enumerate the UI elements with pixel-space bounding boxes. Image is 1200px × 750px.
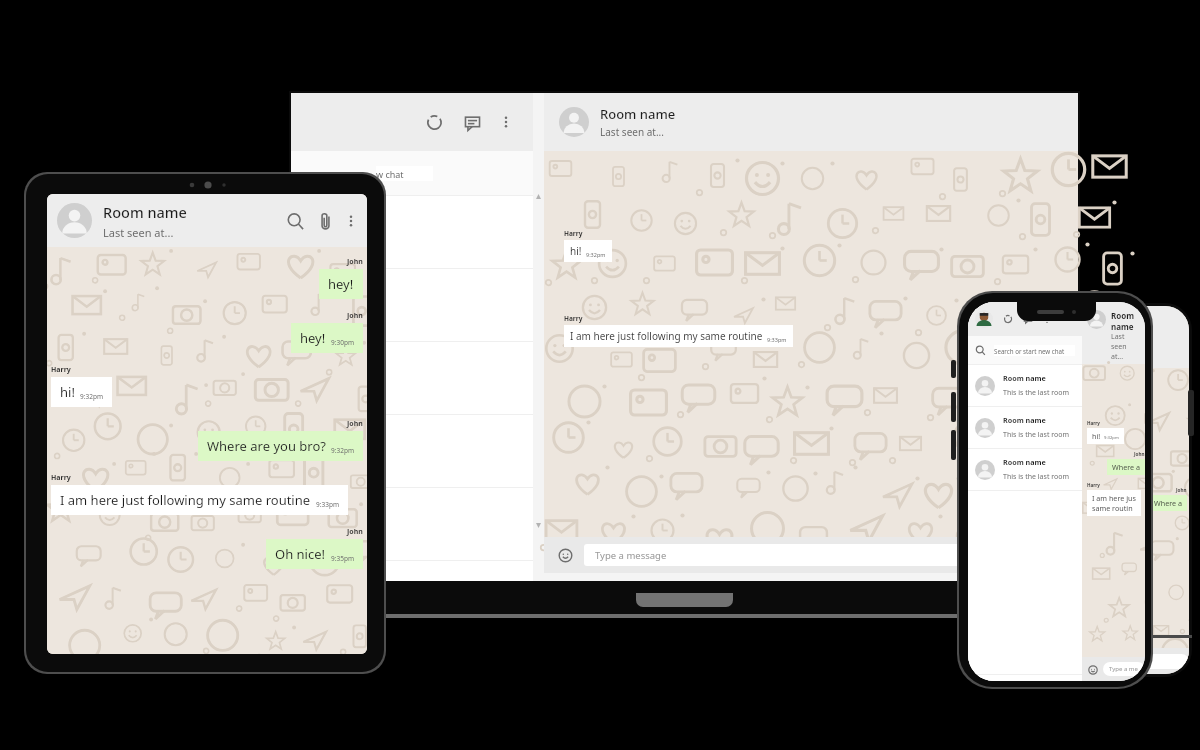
button[interactable]: Emoji [1085,662,1100,677]
staticText: Where are you bro? [207,437,326,455]
button[interactable]: Oh nice! [266,539,363,569]
staticText: I am here just following my same routine [60,491,311,509]
button[interactable]: Where are you bro? [198,431,363,461]
button[interactable]: Where a [1149,495,1187,511]
staticText: This is the last room [1003,430,1069,440]
button[interactable]: hey! [291,323,363,353]
button[interactable]: I am here just following my same routine [564,325,793,347]
button[interactable]: Emoji [553,543,577,567]
button[interactable] [291,269,533,341]
button[interactable]: hey! [319,269,363,299]
staticText: Oh nice! [275,545,326,563]
button[interactable]: Status [419,107,449,137]
staticText: Last seen at... [1111,332,1127,362]
staticText: Where a [1154,498,1182,508]
staticText: 9:32pm [1107,469,1122,475]
staticText: Last seen at... [1116,338,1133,368]
button[interactable]: I am here jus same routin [1087,490,1141,516]
staticText: Room name [1003,457,1046,467]
button[interactable]: Room name [968,407,1082,448]
button[interactable]: hi! [564,240,612,262]
staticText: John [347,527,363,537]
staticText: Harry [1087,420,1100,426]
staticText: I am here just following my same routine [570,329,763,343]
staticText: 9:35pm [331,554,354,563]
staticText: 9:33pm [767,336,787,343]
button[interactable]: Room name [1082,302,1145,364]
staticText: Type a message [595,549,667,562]
button[interactable]: Room name [968,449,1082,490]
button[interactable]: Room name [47,194,367,247]
staticText: 9:30pm [331,338,354,347]
button[interactable]: Room name [544,93,1078,151]
button[interactable]: More options [1040,313,1053,326]
staticText: John [347,311,363,321]
staticText: Search or start new chat [994,347,1065,355]
button[interactable]: More options [495,111,517,133]
button[interactable] [291,415,533,487]
staticText: Harry [51,473,71,483]
button[interactable]: Room name [968,365,1082,406]
staticText: Harry [564,314,583,323]
staticText: Harry [51,365,71,375]
button[interactable]: Status [1000,311,1016,327]
staticText: 9:32pm [586,251,606,258]
button[interactable]: I am here jus same routin [1090,528,1144,554]
staticText: This is the last room [1003,388,1069,398]
staticText: Room name [1003,415,1046,425]
button[interactable]: hi! [1087,428,1124,444]
staticText: Room name [1111,310,1135,332]
staticText: Last seen at... [103,225,174,240]
staticText: w chat [376,168,404,180]
button[interactable]: Type a me [1106,654,1189,669]
staticText: John [347,257,363,267]
staticText: hi! [60,383,75,401]
button[interactable]: I am here just following my same routine [51,485,348,515]
staticText: 9:33pm [316,500,339,509]
staticText: Type a me [1109,665,1138,673]
staticText: John [347,419,363,429]
button[interactable]: New chat [1020,311,1036,327]
button[interactable] [291,196,533,268]
button[interactable]: New chat [457,107,487,137]
staticText: 9:32pm [1104,435,1119,441]
button[interactable]: Emoji [1087,653,1103,669]
button[interactable]: Where a [1107,459,1145,475]
staticText: Room name [103,202,187,222]
staticText: Harry [1087,482,1100,488]
staticText: Type a me [1113,658,1142,666]
button[interactable]: Type a message [584,544,1069,566]
staticText: Room name [1116,314,1142,338]
button[interactable]: More options [340,210,362,232]
staticText: I am here jus same routin [1092,493,1136,513]
staticText: This is the last room [1003,472,1069,482]
staticText: hi! [1092,431,1101,441]
staticText: hey! [300,329,326,347]
button[interactable]: hi! [1090,462,1127,478]
button[interactable]: Search or start new chat [968,336,1082,364]
button[interactable]: Room name [1083,306,1189,368]
staticText: John [1176,487,1187,493]
staticText: John [1134,451,1145,457]
staticText: Room name [1003,373,1046,383]
button[interactable] [291,342,533,414]
button[interactable]: Attach [310,206,340,236]
button[interactable]: w chat [291,151,533,195]
button[interactable]: Profile [975,310,993,328]
staticText: 9:32pm [331,446,354,455]
button[interactable]: hi! [51,377,112,407]
staticText: Harry [1090,454,1103,460]
button[interactable] [291,488,533,560]
staticText: Room name [600,105,676,123]
staticText: 9:32pm [80,392,103,401]
button[interactable]: Type a me [1103,662,1145,676]
button[interactable]: Search [280,206,310,236]
staticText: hey! [328,275,354,293]
staticText: Last seen at... [600,125,664,139]
staticText: Harry [564,229,583,238]
staticText: I am here jus same routin [1095,531,1139,551]
staticText: Where a [1112,462,1140,472]
staticText: hi! [570,244,582,258]
